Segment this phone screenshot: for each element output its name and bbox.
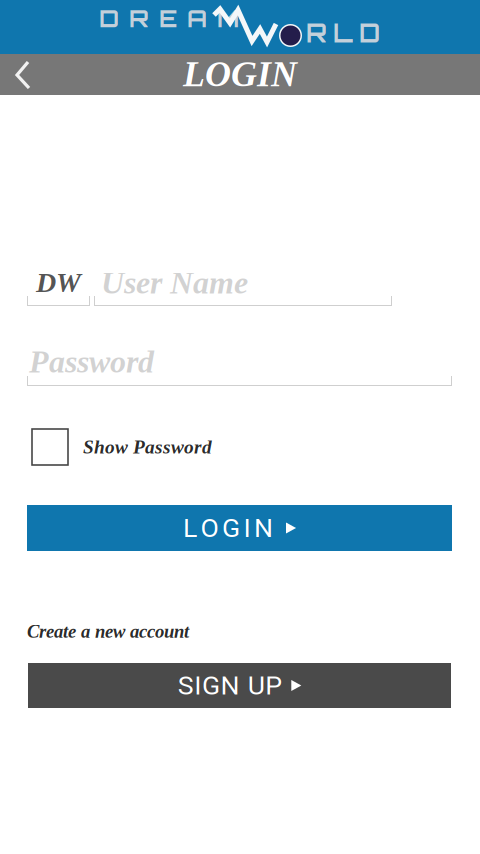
staticText: L (333, 17, 353, 49)
staticText: LOGIN (183, 54, 297, 94)
button[interactable]: LOGIN (27, 505, 452, 551)
staticText: M (217, 3, 239, 33)
staticText: Create a new account (27, 621, 189, 642)
button[interactable]: SIGN UP (28, 663, 451, 708)
staticText: Password (29, 344, 154, 379)
staticText: SIGN UP (178, 670, 282, 701)
staticText: A (187, 3, 207, 33)
staticText: DW (36, 267, 81, 298)
button[interactable]: Back (0, 54, 48, 95)
staticText: User Name (101, 265, 248, 300)
staticText: E (159, 3, 177, 33)
staticText: D (359, 17, 380, 49)
staticText: D (99, 3, 119, 33)
staticText: Show Password (83, 436, 212, 458)
staticText: LOGIN (183, 512, 273, 544)
button[interactable]: Show Password (32, 427, 262, 467)
staticText: R (306, 17, 327, 49)
staticText: R (129, 3, 149, 33)
